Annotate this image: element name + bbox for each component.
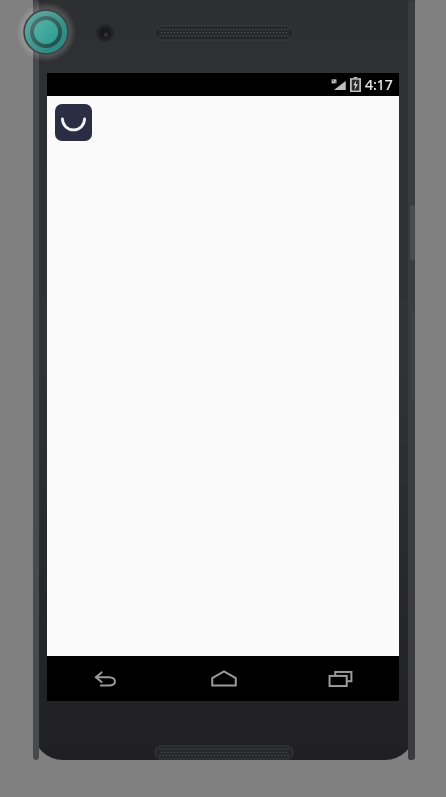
button[interactable]: Recent apps: [282, 656, 399, 701]
button[interactable]: Shop app: [55, 104, 92, 141]
button[interactable]: Back: [47, 656, 165, 701]
button[interactable]: Home: [165, 656, 282, 701]
staticText: 4:17: [365, 75, 393, 94]
